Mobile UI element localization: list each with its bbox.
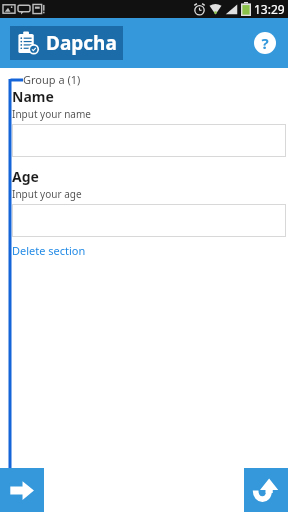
staticText: ? (261, 33, 269, 53)
button[interactable] (12, 124, 286, 157)
staticText: Input your age (12, 187, 82, 201)
staticText: Delete section (12, 243, 86, 258)
staticText: 13:29 (254, 1, 285, 17)
staticText: Input your name (12, 107, 91, 121)
button[interactable]: Help (252, 30, 278, 56)
button[interactable]: Next (0, 468, 44, 512)
button[interactable] (12, 204, 286, 237)
staticText: Age (12, 167, 39, 186)
button[interactable]: Delete section (12, 242, 86, 259)
button[interactable]: Dapcha (10, 26, 123, 60)
staticText: Group a (1) (23, 72, 81, 87)
staticText: Dapcha (46, 30, 117, 56)
staticText: Name (12, 87, 54, 106)
button[interactable]: Submit (244, 468, 288, 512)
